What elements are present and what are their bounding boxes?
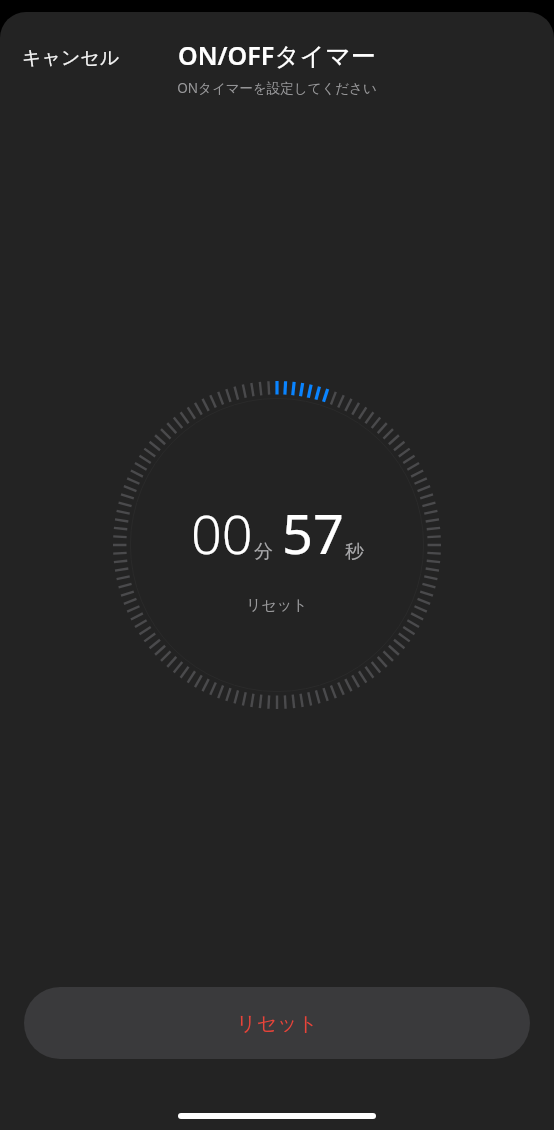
staticText: 分 (254, 540, 273, 564)
button[interactable]: タイマーダイヤル (107, 375, 447, 715)
staticText: ONタイマーを設定してください (177, 79, 377, 97)
staticText: 00 (191, 496, 253, 570)
staticText: ON/OFFタイマー (178, 38, 376, 72)
button[interactable]: キャンセル (10, 42, 132, 74)
staticText: リセット (236, 1011, 318, 1036)
staticText: キャンセル (22, 46, 120, 70)
staticText: リセット (246, 596, 308, 615)
staticText: 57 (282, 496, 344, 570)
staticText: 秒 (345, 540, 364, 564)
button[interactable]: リセット (24, 987, 530, 1059)
